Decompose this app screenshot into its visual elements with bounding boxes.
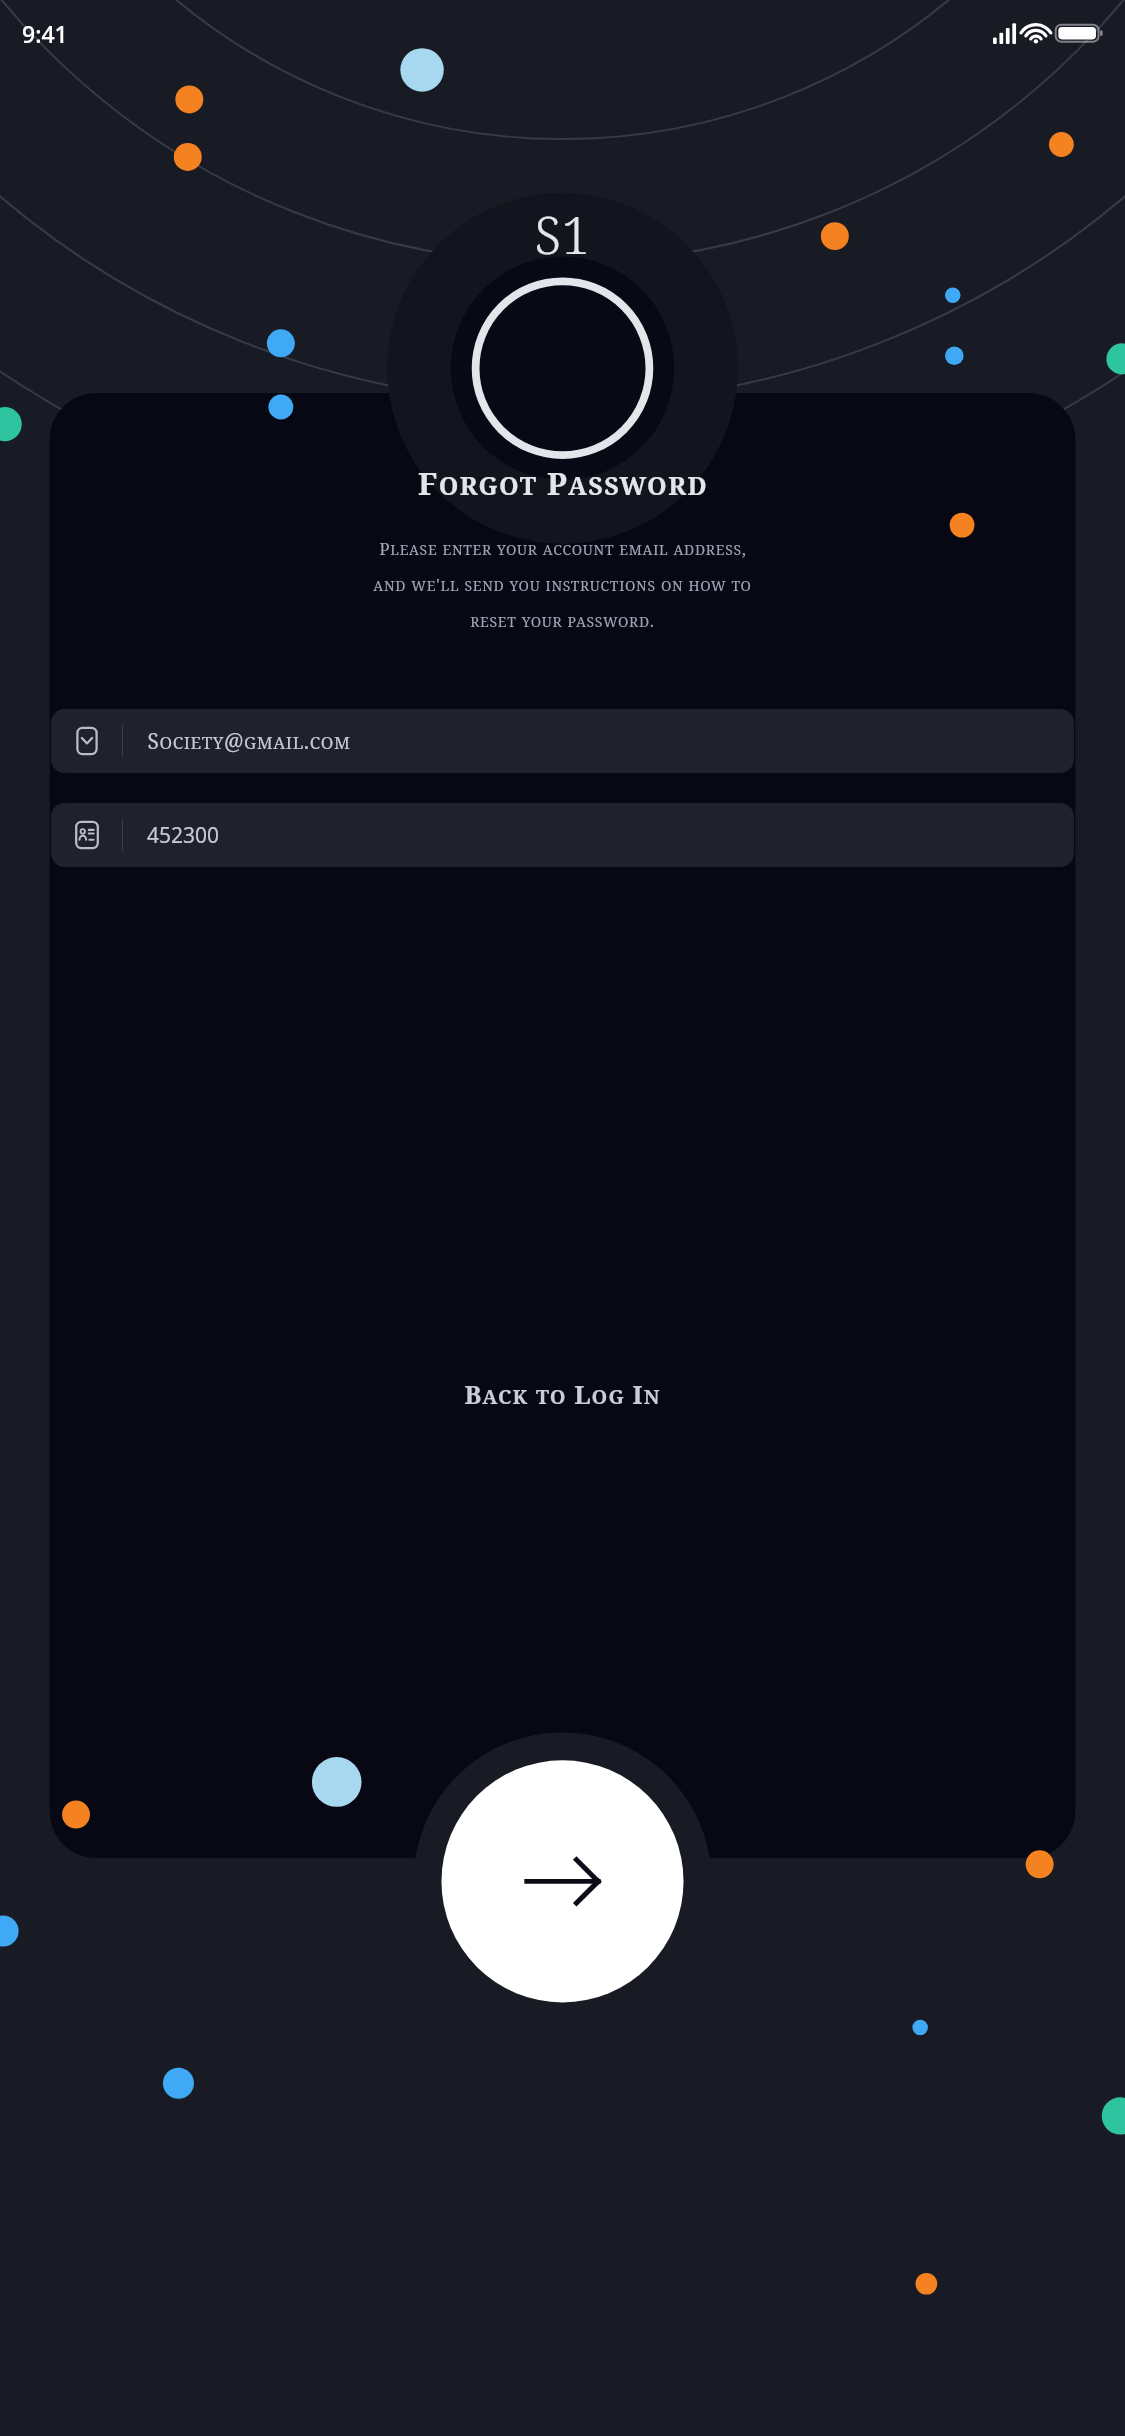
button[interactable]: SOCIETY@GMAIL.COM bbox=[51, 709, 1074, 773]
staticText: BACK TO LOG IN bbox=[464, 1377, 661, 1411]
button[interactable]: BACK TO LOG IN bbox=[446, 1368, 679, 1420]
staticText: 452300 bbox=[147, 821, 220, 850]
staticText: FORGOT PASSWORD bbox=[418, 462, 708, 504]
staticText: S1 bbox=[534, 198, 591, 269]
staticText: RESET YOUR PASSWORD. bbox=[470, 609, 655, 632]
staticText: AND WE'LL SEND YOU INSTRUCTIONS ON HOW T… bbox=[373, 573, 752, 596]
staticText: PLEASE ENTER YOUR ACCOUNT EMAIL ADDRESS, bbox=[379, 537, 747, 560]
button[interactable]: 452300 bbox=[51, 803, 1074, 867]
staticText: SOCIETY@GMAIL.COM bbox=[147, 727, 351, 756]
staticText: 9:41 bbox=[22, 18, 68, 49]
